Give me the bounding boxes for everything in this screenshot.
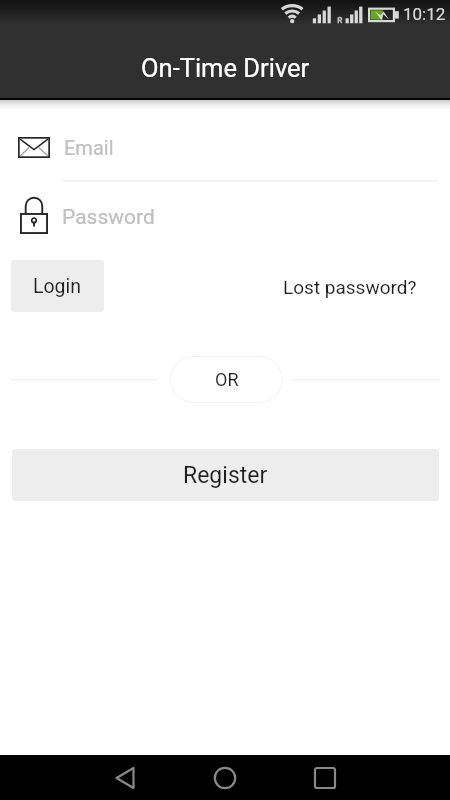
button[interactable]: Recents xyxy=(295,755,355,800)
staticText: 10:12 xyxy=(403,4,446,24)
button[interactable]: Lost password? xyxy=(274,265,426,309)
staticText: Email xyxy=(64,136,114,159)
staticText: OR xyxy=(215,369,239,390)
button[interactable]: Password xyxy=(0,193,450,239)
button[interactable]: Back xyxy=(95,755,155,800)
staticText: Register xyxy=(183,462,268,489)
staticText: On-Time Driver xyxy=(141,53,310,83)
staticText: Password xyxy=(62,205,155,230)
staticText: Lost password? xyxy=(283,276,417,298)
button[interactable]: Login xyxy=(11,260,104,312)
button[interactable]: Home xyxy=(195,755,255,800)
button[interactable]: Register xyxy=(12,449,439,501)
button[interactable]: Email xyxy=(0,119,450,175)
staticText: Login xyxy=(33,275,82,298)
